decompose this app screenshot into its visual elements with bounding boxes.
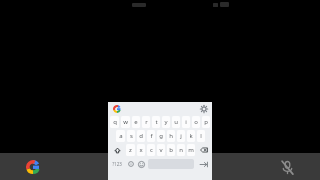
- button[interactable]: j: [177, 130, 185, 142]
- button[interactable]: m: [187, 144, 195, 156]
- button[interactable]: s: [127, 130, 135, 142]
- button[interactable]: d: [137, 130, 145, 142]
- staticText: l: [200, 132, 202, 140]
- staticText: z: [129, 146, 132, 154]
- button[interactable]: u: [172, 116, 180, 128]
- staticText: t: [155, 118, 158, 126]
- staticText: p: [204, 118, 208, 126]
- button[interactable]: Comma: [126, 158, 135, 170]
- button[interactable]: Emoji: [137, 158, 146, 170]
- staticText: e: [134, 118, 138, 126]
- button[interactable]: n: [177, 144, 185, 156]
- staticText: j: [180, 132, 182, 140]
- button[interactable]: h: [167, 130, 175, 142]
- staticText: r: [145, 118, 148, 126]
- button[interactable]: Google search: [111, 103, 122, 114]
- button[interactable]: a: [116, 130, 125, 142]
- button[interactable]: i: [182, 116, 190, 128]
- staticText: u: [174, 118, 178, 126]
- button[interactable]: g: [157, 130, 165, 142]
- staticText: i: [185, 118, 187, 126]
- button[interactable]: c: [147, 144, 155, 156]
- button[interactable]: Google Assistant: [22, 156, 44, 178]
- button[interactable]: f: [147, 130, 155, 142]
- button[interactable]: Backspace: [197, 144, 210, 156]
- button[interactable]: k: [187, 130, 195, 142]
- button[interactable]: b: [167, 144, 175, 156]
- button[interactable]: z: [126, 144, 135, 156]
- staticText: s: [130, 132, 133, 140]
- staticText: b: [169, 146, 173, 154]
- staticText: x: [139, 146, 143, 154]
- staticText: c: [150, 146, 153, 154]
- staticText: f: [150, 132, 153, 140]
- button[interactable]: v: [157, 144, 165, 156]
- button[interactable]: r: [142, 116, 150, 128]
- staticText: y: [164, 118, 168, 126]
- staticText: a: [119, 132, 123, 140]
- staticText: h: [169, 132, 173, 140]
- staticText: ?123: [112, 161, 122, 167]
- staticText: m: [188, 146, 194, 154]
- button[interactable]: Keyboard settings: [198, 103, 209, 114]
- button[interactable]: t: [152, 116, 160, 128]
- button[interactable]: Shift: [110, 144, 124, 156]
- staticText: g: [159, 132, 163, 140]
- button[interactable]: p: [202, 116, 210, 128]
- staticText: q: [113, 118, 117, 126]
- button[interactable]: o: [192, 116, 200, 128]
- staticText: d: [139, 132, 143, 140]
- button[interactable]: x: [137, 144, 145, 156]
- button[interactable]: Symbols: [110, 158, 124, 170]
- button[interactable]: Microphone muted: [276, 156, 298, 178]
- staticText: v: [159, 146, 163, 154]
- button[interactable]: y: [162, 116, 170, 128]
- button[interactable]: w: [121, 116, 130, 128]
- button[interactable]: Enter: [196, 158, 210, 170]
- staticText: k: [189, 132, 193, 140]
- staticText: w: [123, 118, 128, 126]
- button[interactable]: q: [110, 116, 119, 128]
- staticText: o: [194, 118, 198, 126]
- staticText: n: [179, 146, 183, 154]
- button[interactable]: l: [197, 130, 205, 142]
- button[interactable]: e: [132, 116, 140, 128]
